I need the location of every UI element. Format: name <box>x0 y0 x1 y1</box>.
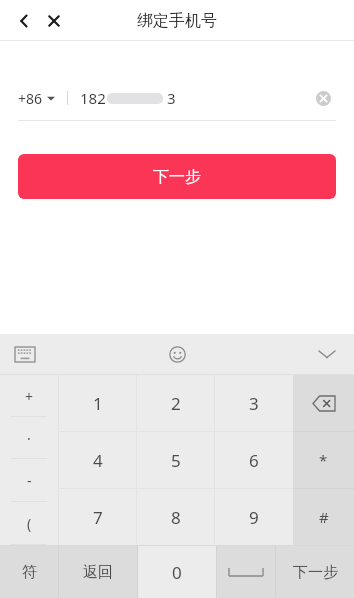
staticText: 0 <box>172 561 182 584</box>
staticText: 9 <box>249 506 259 529</box>
button[interactable]: 符 <box>0 546 58 598</box>
button[interactable]: 9 <box>215 489 293 545</box>
button[interactable]: 6 <box>215 432 293 488</box>
staticText: 2 <box>171 392 181 415</box>
button[interactable]: 下一步 <box>276 546 354 598</box>
staticText: 返回 <box>83 563 113 582</box>
staticText: 182 <box>80 88 106 108</box>
button[interactable]: 2 <box>137 375 215 431</box>
button[interactable]: 3 <box>215 375 293 431</box>
button[interactable]: 下一步 <box>18 154 336 199</box>
staticText: 下一步 <box>153 167 201 187</box>
button[interactable]: 4 <box>59 432 137 488</box>
staticText: 1 <box>93 392 103 415</box>
staticText: - <box>27 471 32 490</box>
staticText: · <box>27 429 31 448</box>
button[interactable]: 8 <box>137 489 215 545</box>
staticText: * <box>319 450 328 470</box>
staticText: 5 <box>171 449 181 472</box>
button[interactable]: * <box>293 432 354 488</box>
staticText: 下一步 <box>293 563 338 582</box>
button[interactable]: Clear <box>310 85 336 111</box>
button[interactable]: Space <box>217 546 275 598</box>
staticText: + <box>25 387 34 406</box>
button[interactable]: Switch keyboard <box>10 339 40 369</box>
button[interactable]: 返回 <box>59 546 137 598</box>
button[interactable]: + <box>0 375 58 417</box>
button[interactable]: 5 <box>137 432 215 488</box>
staticText: 4 <box>93 449 103 472</box>
button[interactable]: # <box>293 489 354 545</box>
staticText: 8 <box>171 506 181 529</box>
staticText: 符 <box>22 563 37 582</box>
staticText: ( <box>27 514 32 533</box>
staticText: 3 <box>167 88 176 108</box>
button[interactable]: 7 <box>59 489 137 545</box>
button[interactable]: · <box>0 417 58 459</box>
staticText: +86 <box>18 89 43 108</box>
button[interactable]: 0 <box>138 546 216 598</box>
button[interactable]: 1 <box>59 375 137 431</box>
staticText: 7 <box>93 506 103 529</box>
button[interactable]: Emoji <box>162 339 192 369</box>
button[interactable]: Hide keyboard <box>312 339 342 369</box>
staticText: 3 <box>249 392 259 415</box>
staticText: 绑定手机号 <box>137 11 217 31</box>
button[interactable]: - <box>0 459 58 502</box>
staticText: 6 <box>249 449 259 472</box>
button[interactable]: Back <box>8 5 40 37</box>
button[interactable]: Delete <box>293 375 354 431</box>
button[interactable]: Close <box>38 5 70 37</box>
staticText: # <box>319 507 329 527</box>
button[interactable]: ( <box>0 502 58 545</box>
button[interactable]: +86 <box>18 89 55 108</box>
